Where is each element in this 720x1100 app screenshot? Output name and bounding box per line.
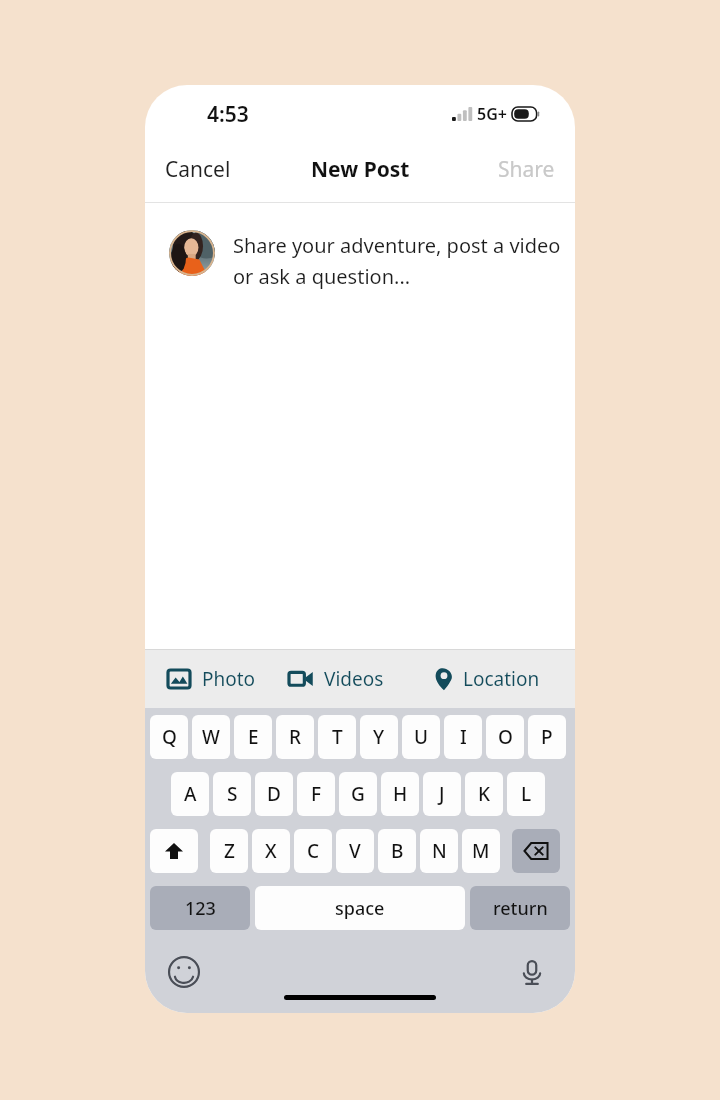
button[interactable]: B	[378, 829, 416, 873]
button[interactable]: W	[192, 715, 230, 759]
staticText: A	[184, 781, 197, 807]
staticText: H	[393, 781, 408, 807]
staticText: G	[351, 781, 365, 807]
staticText: X	[265, 838, 277, 864]
staticText: 4:53	[207, 100, 249, 129]
staticText: Videos	[324, 666, 384, 692]
button[interactable]: Backspace	[512, 829, 560, 873]
staticText: W	[202, 724, 220, 750]
button[interactable]: Emoji	[167, 955, 201, 989]
button[interactable]: H	[381, 772, 419, 816]
button[interactable]: Z	[210, 829, 248, 873]
button[interactable]: T	[318, 715, 356, 759]
staticText: Q	[162, 724, 177, 750]
button[interactable]: J	[423, 772, 461, 816]
button[interactable]: F	[297, 772, 335, 816]
button[interactable]: Share	[486, 147, 567, 192]
button[interactable]: 123	[150, 886, 250, 930]
button[interactable]: E	[234, 715, 272, 759]
staticText: M	[472, 838, 490, 864]
button[interactable]: Cancel	[153, 147, 243, 192]
button[interactable]: Videos	[289, 650, 432, 708]
button[interactable]: S	[213, 772, 251, 816]
button[interactable]: C	[294, 829, 332, 873]
staticText: F	[311, 781, 322, 807]
staticText: R	[289, 724, 302, 750]
button[interactable]: Y	[360, 715, 398, 759]
button[interactable]: L	[507, 772, 545, 816]
button[interactable]: A	[171, 772, 209, 816]
staticText: U	[414, 724, 429, 750]
staticText: 5G+	[477, 103, 507, 125]
button[interactable]: M	[462, 829, 500, 873]
staticText: C	[307, 838, 320, 864]
staticText: Location	[463, 666, 540, 692]
button[interactable]: N	[420, 829, 458, 873]
button[interactable]: D	[255, 772, 293, 816]
staticText: space	[335, 896, 385, 921]
button[interactable]: space	[255, 886, 465, 930]
button[interactable]: O	[486, 715, 524, 759]
staticText: Cancel	[165, 155, 231, 184]
staticText: New Post	[311, 155, 410, 184]
staticText: S	[227, 781, 238, 807]
staticText: Y	[373, 724, 385, 750]
staticText: Photo	[202, 666, 256, 692]
button[interactable]: P	[528, 715, 566, 759]
staticText: K	[478, 781, 491, 807]
staticText: Share	[498, 155, 555, 184]
button[interactable]: V	[336, 829, 374, 873]
button[interactable]: Dictation	[515, 955, 549, 989]
staticText: Share your adventure, post a video or as…	[233, 232, 561, 289]
button[interactable]: I	[444, 715, 482, 759]
staticText: O	[498, 724, 513, 750]
button[interactable]: R	[276, 715, 314, 759]
button[interactable]: Q	[150, 715, 188, 759]
button[interactable]: Shift	[150, 829, 198, 873]
staticText: 123	[185, 896, 216, 921]
staticText: P	[541, 724, 553, 750]
staticText: L	[521, 781, 532, 807]
button[interactable]: return	[470, 886, 570, 930]
staticText: V	[349, 838, 361, 864]
button[interactable]: X	[252, 829, 290, 873]
staticText: I	[460, 724, 467, 750]
staticText: J	[439, 781, 445, 807]
staticText: N	[432, 838, 447, 864]
button[interactable]: U	[402, 715, 440, 759]
button[interactable]: Location	[432, 650, 575, 708]
staticText: Z	[224, 838, 235, 864]
staticText: E	[248, 724, 259, 750]
button[interactable]: K	[465, 772, 503, 816]
staticText: return	[493, 896, 548, 921]
staticText: D	[267, 781, 281, 807]
button[interactable]: Photo	[145, 650, 289, 708]
button[interactable]: G	[339, 772, 377, 816]
staticText: T	[332, 724, 343, 750]
staticText: B	[391, 838, 404, 864]
